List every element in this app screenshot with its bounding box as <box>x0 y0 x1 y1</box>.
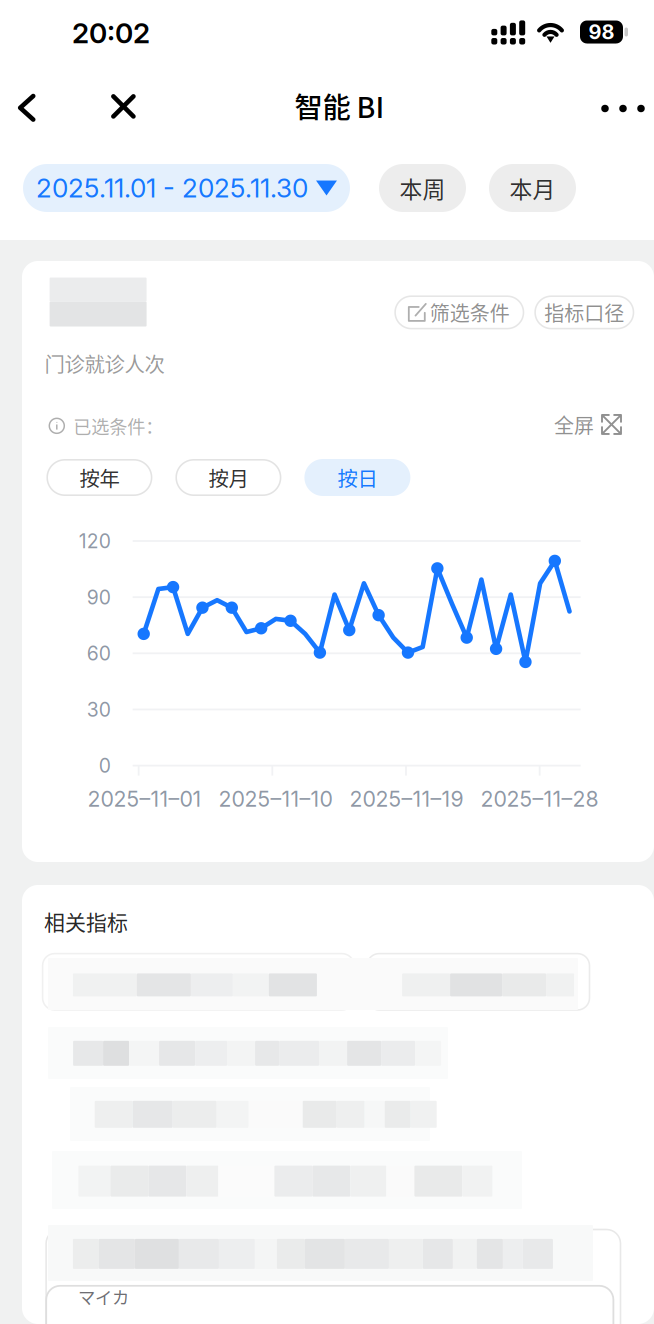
button[interactable]: More <box>591 78 654 138</box>
staticText: 0 <box>99 754 111 777</box>
button[interactable]: 按月 <box>175 459 281 496</box>
staticText: 已选条件： <box>73 413 163 439</box>
staticText: 20:02 <box>72 16 150 50</box>
staticText: 120 <box>79 529 111 553</box>
button[interactable]: 本月 <box>489 164 576 212</box>
staticText: 2025–11–10 <box>218 786 332 812</box>
staticText: 60 <box>87 642 111 665</box>
button[interactable]: Close <box>94 76 152 136</box>
staticText: 2025–11–19 <box>349 786 463 812</box>
staticText: 本月 <box>509 171 555 204</box>
button[interactable]: 2025.11.01 - 2025.11.30 <box>23 164 350 212</box>
staticText: 智能 BI <box>294 85 384 126</box>
staticText: 按月 <box>208 463 248 492</box>
button[interactable]: 指标口径 <box>534 295 634 329</box>
staticText: 按日 <box>337 463 377 492</box>
staticText: 指标口径 <box>544 298 624 327</box>
button[interactable]: Back <box>0 78 56 138</box>
staticText: 2025–11–01 <box>87 786 201 812</box>
staticText: 90 <box>87 586 111 609</box>
staticText: マイカ <box>78 1284 129 1309</box>
staticText: 相关指标 <box>44 906 128 936</box>
staticText: 全屏 <box>554 410 594 439</box>
staticText: 30 <box>87 698 111 721</box>
staticText: 门诊就诊人次 <box>44 349 164 378</box>
staticText: 本周 <box>399 171 445 204</box>
staticText: 筛选条件 <box>430 298 510 327</box>
button[interactable]: 本周 <box>379 164 466 212</box>
button[interactable]: 按日 <box>304 459 410 496</box>
button[interactable]: 筛选条件 <box>394 295 524 329</box>
staticText: 2025.11.01 - 2025.11.30 <box>36 172 308 204</box>
staticText: 98 <box>588 20 614 44</box>
button[interactable]: 按年 <box>46 459 152 496</box>
staticText: 按年 <box>79 463 119 492</box>
button[interactable]: 全屏 <box>546 404 627 445</box>
staticText: 2025–11–28 <box>480 786 598 812</box>
